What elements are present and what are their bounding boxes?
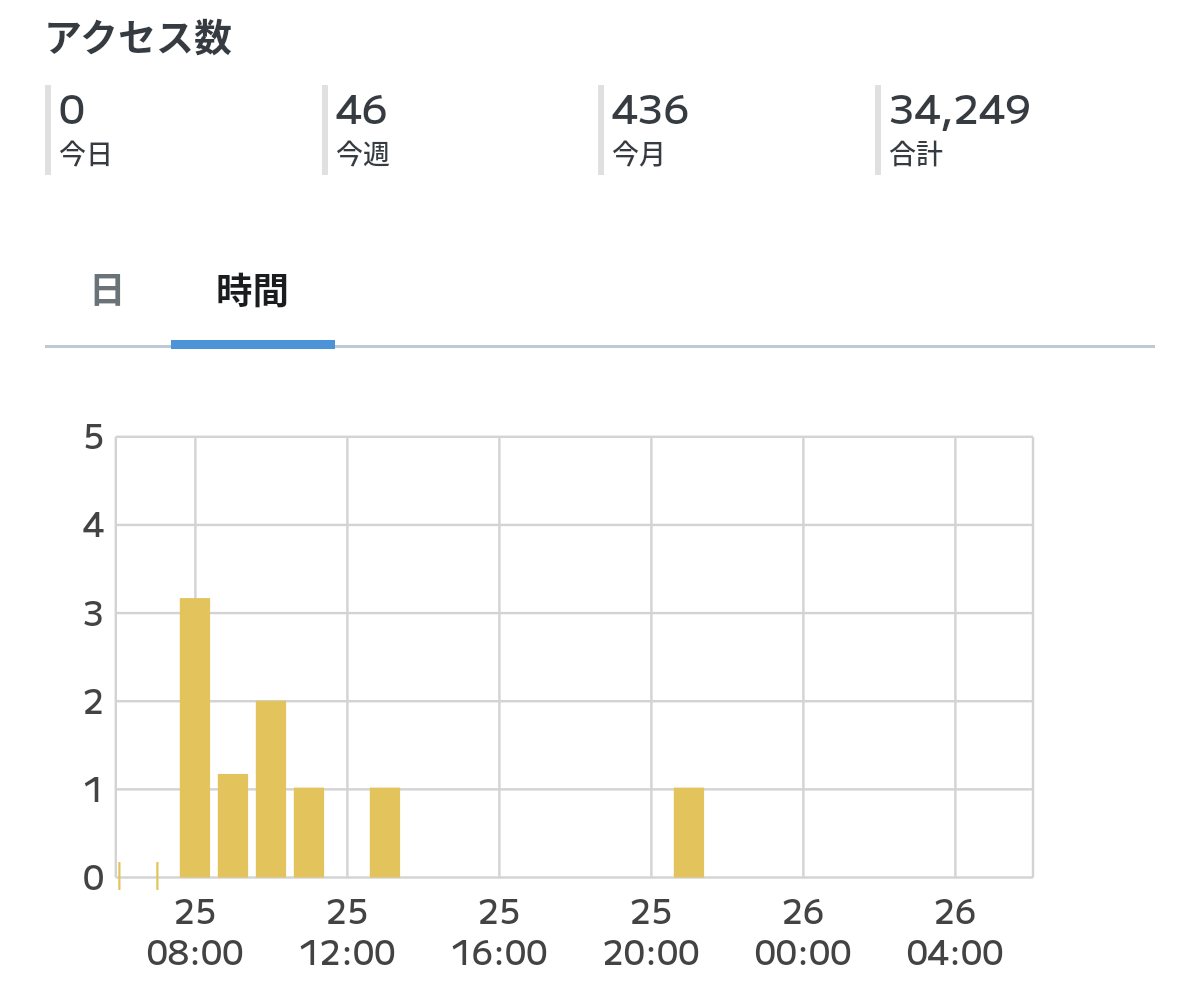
- staticText: 34,249: [889, 77, 1031, 135]
- other: 時間別アクセス数グラフ: [116, 437, 1033, 878]
- staticText: 436: [612, 77, 690, 135]
- staticText: 1: [82, 764, 104, 812]
- staticText: 16:00: [399, 927, 599, 975]
- button[interactable]: 日: [35, 237, 179, 337]
- staticText: 25: [95, 886, 295, 934]
- staticText: 2: [82, 676, 104, 724]
- button[interactable]: 0: [45, 85, 321, 175]
- staticText: 08:00: [95, 927, 295, 975]
- staticText: 3: [82, 588, 104, 636]
- staticText: 0: [82, 852, 104, 900]
- staticText: 今週: [336, 133, 390, 172]
- staticText: 0: [59, 77, 85, 135]
- staticText: 時間: [216, 262, 289, 315]
- staticText: 12:00: [247, 927, 447, 975]
- staticText: 25: [399, 886, 599, 934]
- staticText: 26: [703, 886, 903, 934]
- button[interactable]: 34,249: [875, 85, 1151, 175]
- staticText: アクセス数: [44, 7, 233, 62]
- staticText: 4: [82, 499, 104, 547]
- staticText: 今日: [59, 133, 113, 172]
- button[interactable]: 時間: [180, 238, 324, 338]
- button[interactable]: 46: [322, 85, 598, 175]
- staticText: 25: [551, 886, 751, 934]
- staticText: 26: [855, 886, 1055, 934]
- staticText: 5: [82, 411, 104, 459]
- button[interactable]: 436: [598, 85, 874, 175]
- staticText: 合計: [889, 133, 943, 172]
- staticText: 00:00: [703, 927, 903, 975]
- staticText: 46: [336, 77, 388, 135]
- staticText: 25: [247, 886, 447, 934]
- staticText: 20:00: [551, 927, 751, 975]
- staticText: 04:00: [855, 927, 1055, 975]
- staticText: 今月: [612, 133, 666, 172]
- staticText: 日: [89, 261, 126, 314]
